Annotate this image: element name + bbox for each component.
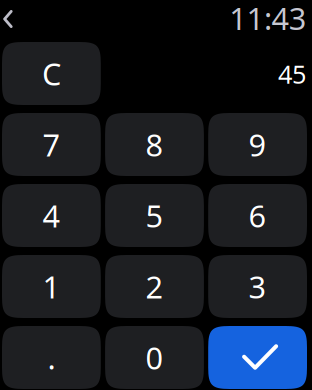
staticText: 9 [249, 124, 267, 165]
button[interactable]: 5 [105, 184, 204, 247]
staticText: 6 [249, 195, 267, 236]
button[interactable]: 6 [208, 184, 307, 247]
button[interactable]: 1 [2, 255, 101, 318]
button[interactable]: 0 [105, 326, 204, 389]
staticText: C [42, 53, 61, 94]
staticText: 2 [145, 266, 163, 307]
button[interactable]: 4 [2, 184, 101, 247]
staticText: . [47, 337, 55, 378]
staticText: 3 [249, 266, 267, 307]
staticText: 45 [278, 57, 306, 91]
button[interactable]: C [2, 42, 101, 105]
button[interactable]: 7 [2, 113, 101, 176]
staticText: 7 [42, 124, 60, 165]
staticText: 11:43 [229, 0, 307, 38]
staticText: 1 [42, 266, 60, 307]
staticText: 0 [145, 337, 163, 378]
button[interactable]: 8 [105, 113, 204, 176]
button[interactable]: 3 [208, 255, 307, 318]
staticText: 4 [42, 195, 60, 236]
button[interactable]: 9 [208, 113, 307, 176]
button[interactable]: Done [208, 326, 307, 389]
staticText: 5 [145, 195, 163, 236]
button[interactable]: . [2, 326, 101, 389]
button[interactable]: Back [0, 4, 21, 34]
button[interactable]: 2 [105, 255, 204, 318]
staticText: 8 [145, 124, 163, 165]
